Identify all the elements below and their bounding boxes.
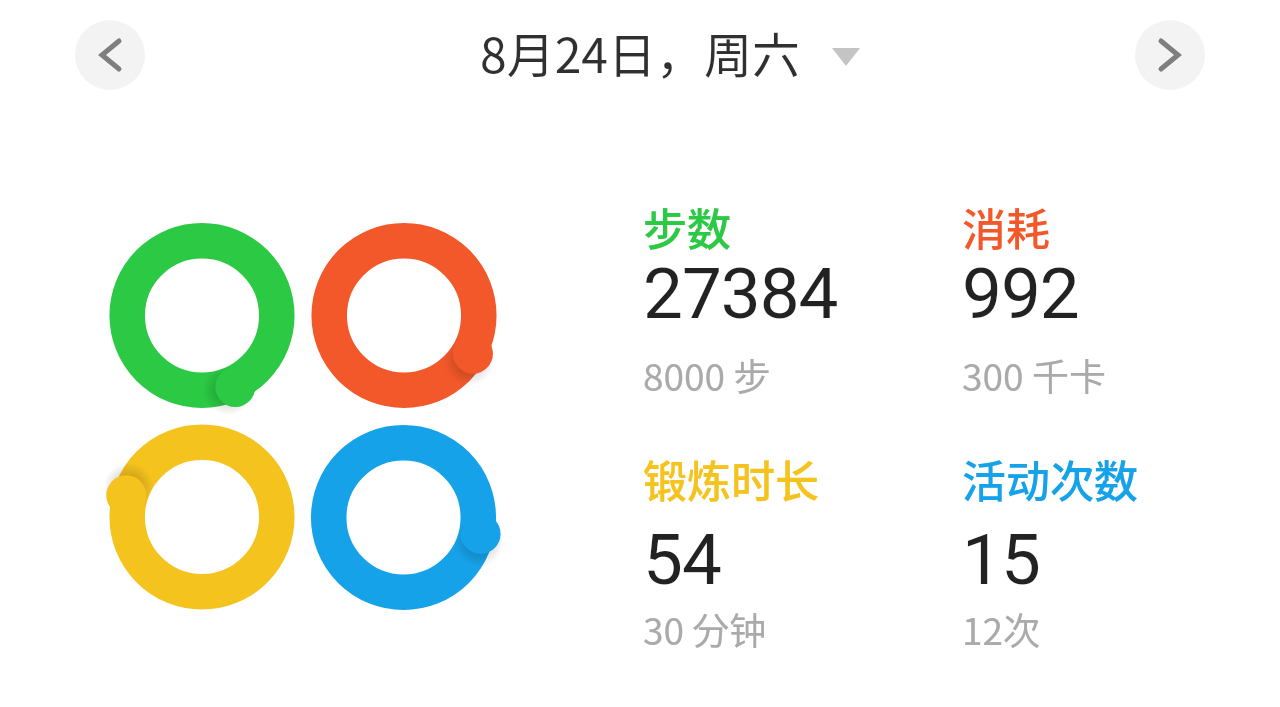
staticText: 54 xyxy=(643,518,721,601)
button[interactable]: 消耗 xyxy=(962,195,1106,278)
button[interactable] xyxy=(75,20,145,90)
staticText: 12次 xyxy=(962,602,1041,656)
button[interactable]: 步数 xyxy=(643,195,838,278)
staticText: 步数 xyxy=(643,195,731,259)
staticText: 活动次数 xyxy=(962,447,1138,511)
staticText: 300 千卡 xyxy=(962,348,1106,402)
staticText: 992 xyxy=(962,252,1079,335)
button[interactable] xyxy=(1135,20,1205,90)
button[interactable]: 活动次数 xyxy=(962,447,1138,530)
staticText: 8月24日，周六 xyxy=(480,17,800,87)
button[interactable]: 锻炼时长 xyxy=(643,447,819,530)
staticText: 15 xyxy=(962,518,1040,601)
button[interactable]: 8月24日，周六 xyxy=(480,17,800,87)
staticText: 8000 步 xyxy=(643,348,771,402)
staticText: 消耗 xyxy=(962,195,1050,259)
staticText: 锻炼时长 xyxy=(643,447,819,511)
staticText: 30 分钟 xyxy=(643,602,767,656)
staticText: 27384 xyxy=(643,252,838,335)
